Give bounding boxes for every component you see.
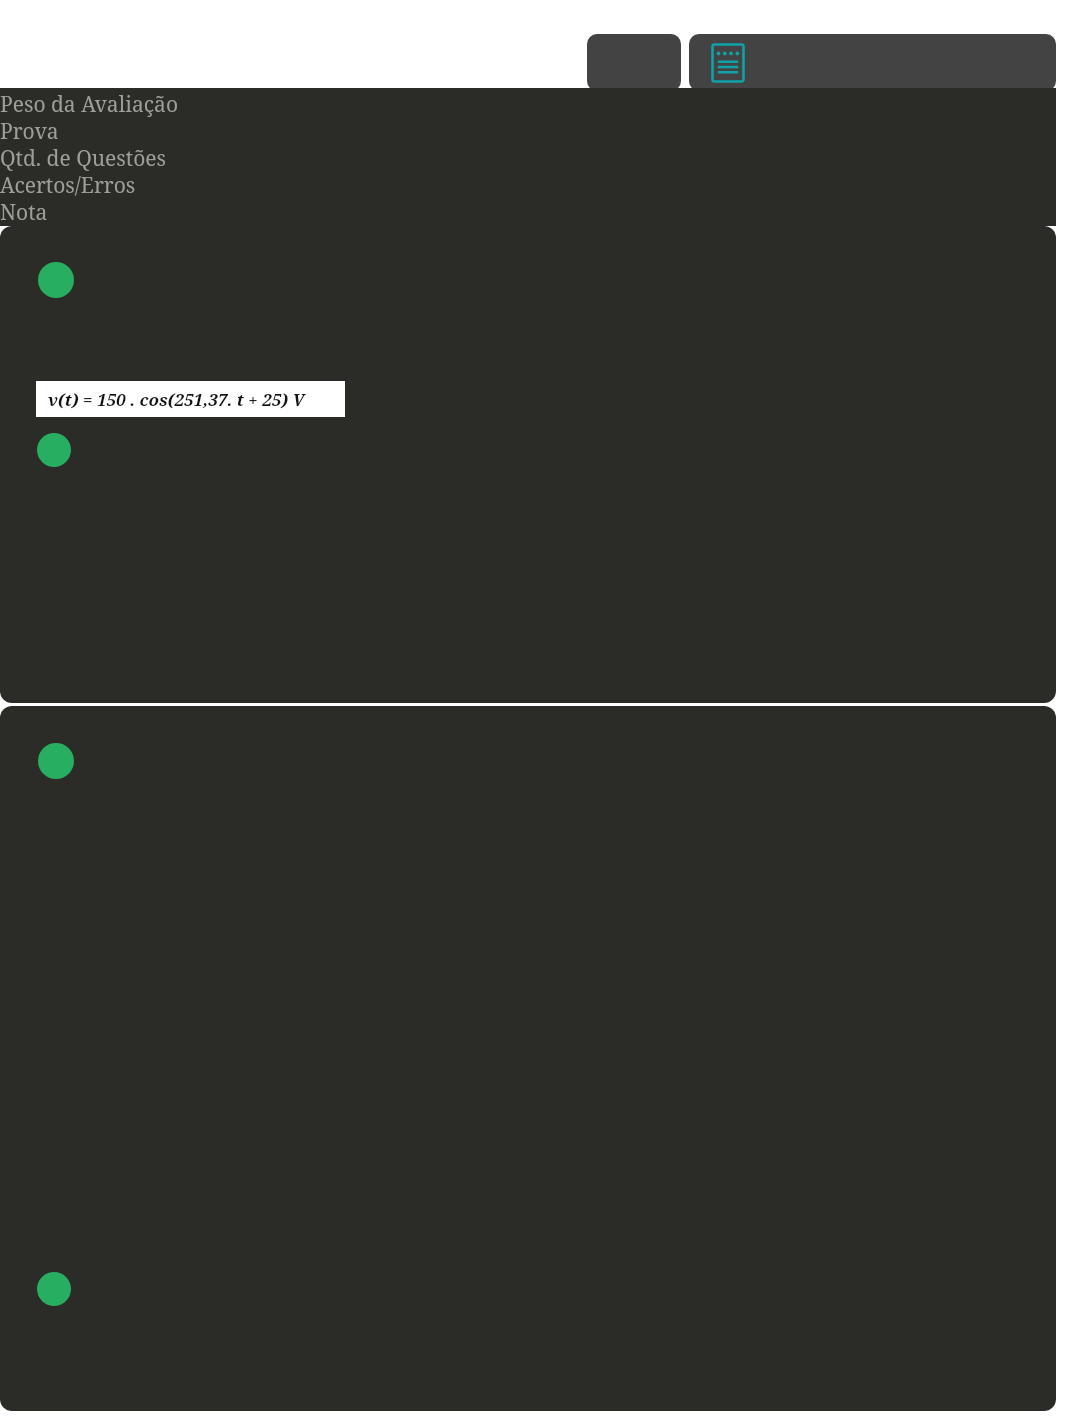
staticText: v(t) = 150 . cos(251,37. t + 25) V [48,388,305,411]
button[interactable]: v(t) = 150 . cos(251,37. t + 25) V [0,226,1056,703]
button[interactable]: Nota [0,198,420,225]
button[interactable]: Qtd. de Questões [0,144,420,171]
button[interactable]: Menu [587,34,681,91]
button[interactable]: Notes [689,34,1056,91]
button[interactable]: Prova [0,117,420,144]
button[interactable]: Notes [711,43,745,83]
button[interactable]: Acertos/Erros [0,171,420,198]
button[interactable]: Peso da Avaliação [0,90,420,117]
button[interactable] [0,706,1056,1411]
